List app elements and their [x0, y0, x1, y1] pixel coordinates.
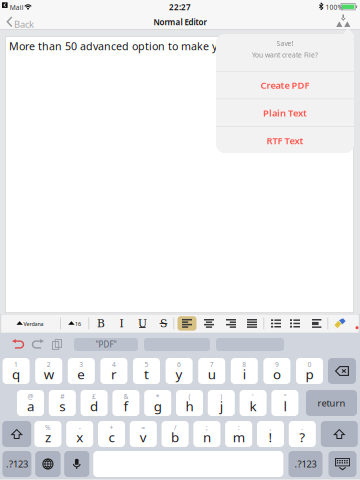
button[interactable]: Block indent: [312, 319, 322, 328]
staticText: *: [156, 392, 160, 401]
button[interactable]: &: [112, 390, 139, 416]
staticText: You want create File?: [252, 50, 318, 59]
staticText: Normal Editor: [153, 17, 206, 27]
button[interactable]: Align left: [177, 316, 196, 331]
button[interactable]: “: [271, 390, 298, 416]
button[interactable]: Strikethrough: [159, 318, 168, 329]
button[interactable]: ;: [193, 421, 220, 447]
button[interactable]: 1: [3, 358, 30, 384]
staticText: Save!: [276, 39, 293, 48]
staticText: x: [76, 428, 83, 446]
button[interactable]: Export: [333, 13, 353, 28]
button[interactable]: @: [17, 390, 44, 416]
button[interactable]: +: [98, 421, 125, 447]
staticText: y: [176, 365, 183, 383]
button[interactable]: Justify: [247, 319, 257, 328]
staticText: .: [301, 423, 303, 432]
button[interactable]: Plain Text: [216, 99, 354, 126]
button[interactable]: Shift: [2, 421, 31, 447]
button[interactable]: #: [49, 390, 76, 416]
button[interactable]: Return: [306, 390, 357, 416]
staticText: 7: [210, 360, 214, 369]
staticText: U: [138, 317, 147, 330]
button[interactable]: Bold: [96, 318, 105, 329]
button[interactable]: Redo: [28, 338, 48, 351]
button[interactable]: =: [130, 421, 157, 447]
staticText: a: [27, 397, 34, 415]
staticText: Mail: [10, 3, 24, 12]
button[interactable]: Numbered list: [290, 319, 300, 328]
button[interactable]: Create PDF: [216, 72, 354, 99]
staticText: B: [97, 317, 105, 330]
button[interactable]: Align right: [226, 319, 236, 328]
button[interactable]: ,: [257, 421, 284, 447]
button[interactable]: Undo: [8, 338, 28, 351]
button[interactable]: Numbers and symbols: [2, 451, 31, 477]
button[interactable]: 6: [166, 358, 193, 384]
button[interactable]: Shift: [321, 421, 358, 447]
staticText: Verdana: [24, 320, 44, 327]
button[interactable]: Numbers and symbols: [288, 451, 322, 477]
staticText: h: [185, 397, 193, 415]
button[interactable]: 2: [35, 358, 62, 384]
button[interactable]: Underline: [138, 318, 147, 329]
staticText: More than 50 advanced option to make you…: [9, 39, 299, 53]
staticText: 4: [112, 360, 116, 369]
button[interactable]: (: [176, 390, 203, 416]
button[interactable]: 8: [231, 358, 258, 384]
staticText: 9: [275, 360, 279, 369]
button[interactable]: 9: [263, 358, 290, 384]
staticText: p: [305, 365, 313, 383]
button[interactable]: 5: [133, 358, 160, 384]
staticText: Plain Text: [263, 107, 307, 119]
staticText: &: [123, 392, 128, 401]
button[interactable]: Delete: [328, 358, 356, 384]
staticText: %: [45, 423, 51, 432]
button[interactable]: Text colour: [334, 318, 346, 329]
staticText: :: [238, 423, 240, 432]
button[interactable]: Hide keyboard: [328, 451, 356, 477]
staticText: +: [109, 423, 113, 432]
button[interactable]: Bulleted list: [271, 319, 281, 328]
button[interactable]: 3: [68, 358, 95, 384]
button[interactable]: Align center: [204, 319, 214, 328]
staticText: 100%: [325, 3, 343, 11]
button[interactable]: Back: [6, 16, 40, 28]
button[interactable]: Dictate: [64, 451, 89, 477]
staticText: “: [284, 392, 286, 401]
button[interactable]: 16: [66, 318, 84, 328]
staticText: RTF Text: [266, 134, 303, 147]
button[interactable]: /: [162, 421, 189, 447]
staticText: £: [92, 392, 96, 401]
button[interactable]: :: [225, 421, 252, 447]
button[interactable]: Paste: [48, 338, 66, 351]
staticText: v: [140, 428, 147, 446]
button[interactable]: ': [240, 390, 267, 416]
staticText: l: [283, 397, 286, 415]
button[interactable]: RTF Text: [216, 127, 354, 154]
button[interactable]: Next keyboard: [35, 451, 61, 477]
button[interactable]: Verdana: [14, 318, 46, 328]
button[interactable]: .: [289, 421, 316, 447]
staticText: return: [317, 397, 345, 409]
staticText: n: [203, 428, 211, 446]
button[interactable]: -: [66, 421, 93, 447]
button[interactable]: 4: [100, 358, 127, 384]
button[interactable]: Back to Mail: [2, 3, 32, 11]
staticText: i: [243, 365, 246, 383]
button[interactable]: ): [208, 390, 235, 416]
staticText: 8: [242, 360, 246, 369]
button[interactable]: Italic: [117, 318, 126, 329]
button[interactable]: 7: [198, 358, 225, 384]
button[interactable]: £: [81, 390, 108, 416]
button[interactable]: *: [144, 390, 171, 416]
staticText: !: [268, 428, 272, 446]
button[interactable]: "PDF": [74, 338, 138, 351]
button[interactable]: %: [34, 421, 61, 447]
button[interactable]: 0: [296, 358, 323, 384]
staticText: 1: [14, 360, 18, 369]
staticText: q: [12, 365, 20, 383]
